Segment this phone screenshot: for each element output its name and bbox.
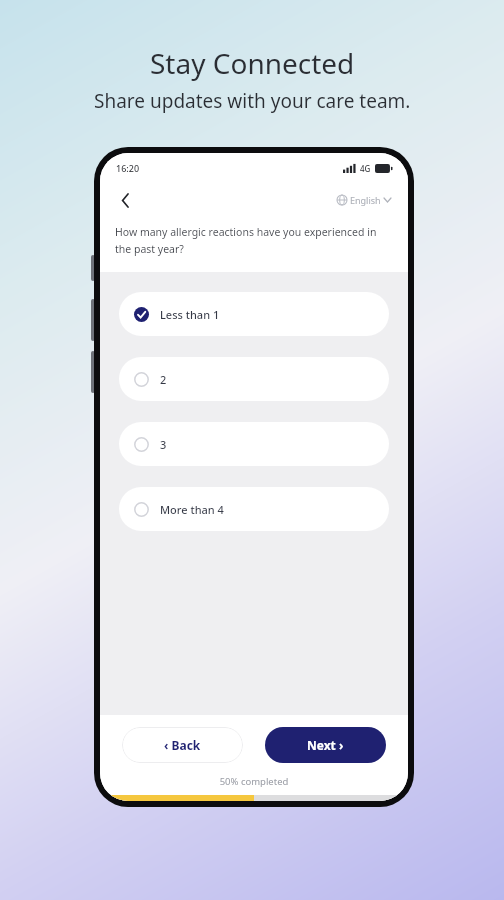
button[interactable]: 3 bbox=[119, 422, 389, 466]
staticText: Less than 1 bbox=[160, 307, 220, 322]
button[interactable]: English bbox=[334, 191, 394, 209]
staticText: Share updates with your care team. bbox=[94, 88, 411, 114]
button[interactable]: More than 4 bbox=[119, 487, 389, 531]
staticText: Next › bbox=[307, 737, 344, 753]
staticText: 3 bbox=[160, 437, 167, 452]
staticText: English bbox=[350, 194, 381, 206]
button[interactable]: 2 bbox=[119, 357, 389, 401]
staticText: ‹ Back bbox=[164, 737, 201, 753]
staticText: 4G bbox=[360, 163, 371, 174]
staticText: 2 bbox=[160, 372, 167, 387]
staticText: More than 4 bbox=[160, 502, 224, 517]
button[interactable]: ‹ Back bbox=[122, 727, 243, 763]
staticText: 50% completed bbox=[100, 775, 408, 788]
button[interactable]: Less than 1 bbox=[119, 292, 389, 336]
staticText: 16:20 bbox=[116, 162, 140, 174]
button[interactable]: Back bbox=[114, 189, 136, 211]
button[interactable]: Next › bbox=[265, 727, 386, 763]
staticText: Stay Connected bbox=[150, 44, 355, 82]
staticText: How many allergic reactions have you exp… bbox=[115, 225, 394, 256]
